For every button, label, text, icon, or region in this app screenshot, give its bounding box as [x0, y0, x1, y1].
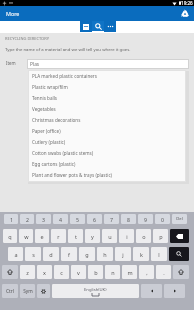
button[interactable]: o — [136, 229, 151, 243]
button[interactable]: 7 — [104, 214, 119, 224]
button[interactable]: b — [88, 265, 103, 279]
button[interactable]: m — [122, 265, 137, 279]
button[interactable]: . — [156, 265, 171, 279]
staticText: z — [26, 269, 29, 276]
button[interactable]: Search — [169, 247, 189, 261]
staticText: More — [6, 10, 20, 17]
staticText: Del — [176, 216, 183, 222]
staticText: n — [111, 269, 115, 276]
staticText: Vegetables — [32, 106, 56, 112]
button[interactable]: n — [105, 265, 120, 279]
staticText: f — [68, 251, 70, 258]
button[interactable]: 6 — [87, 214, 102, 224]
staticText: q — [8, 233, 12, 240]
staticText: 5 — [76, 216, 79, 223]
button[interactable]: 4 — [53, 214, 68, 224]
staticText: x — [43, 269, 46, 276]
button[interactable]: 9 — [138, 214, 153, 224]
staticText: 3 — [42, 216, 45, 223]
staticText: 6 — [93, 216, 96, 223]
staticText: 2 — [26, 216, 29, 223]
staticText: 8 — [127, 216, 130, 223]
button[interactable]: k — [133, 247, 149, 261]
button[interactable]: Sym — [20, 284, 35, 298]
button[interactable]: Plant and flower pots & trays (plastic) — [28, 169, 186, 180]
button[interactable]: 5 — [70, 214, 85, 224]
staticText: i — [126, 233, 128, 240]
button[interactable]: Egg cartons (plastic) — [28, 158, 186, 169]
button[interactable]: Shift — [2, 265, 18, 279]
staticText: s — [32, 251, 35, 258]
button[interactable]: e — [35, 229, 49, 243]
button[interactable]: Cotton swabs (plastic stems) — [28, 147, 186, 158]
staticText: Paper (office) — [32, 128, 61, 134]
button[interactable]: 0 — [155, 214, 170, 224]
button[interactable]: Christmas decorations — [28, 114, 186, 125]
button[interactable]: Tennis balls — [28, 92, 186, 103]
button[interactable]: s — [25, 247, 41, 261]
button[interactable]: Left — [141, 284, 162, 298]
staticText: Sym — [23, 288, 33, 295]
button[interactable]: 3 — [36, 214, 51, 224]
button[interactable]: q — [3, 229, 17, 243]
staticText: 0 — [161, 216, 164, 223]
button[interactable]: More options — [104, 21, 116, 32]
staticText: l — [158, 251, 160, 258]
staticText: v — [77, 269, 80, 276]
button[interactable]: z — [20, 265, 35, 279]
button[interactable]: Backspace — [170, 229, 189, 243]
staticText: t — [75, 233, 77, 240]
staticText: Ctrl — [6, 288, 14, 295]
staticText: English(UK) — [84, 287, 107, 293]
button[interactable]: f — [61, 247, 77, 261]
staticText: h — [103, 251, 107, 258]
button[interactable]: r — [51, 229, 66, 243]
button[interactable]: Directory — [80, 21, 92, 32]
button[interactable]: Settings — [37, 284, 50, 298]
button[interactable]: t — [68, 229, 83, 243]
button[interactable]: g — [79, 247, 95, 261]
button[interactable]: 8 — [121, 214, 136, 224]
button[interactable]: , — [139, 265, 154, 279]
button[interactable]: Del — [172, 214, 187, 224]
staticText: Christmas decorations — [32, 117, 81, 123]
button[interactable]: Cutlery (plastic) — [28, 136, 186, 147]
button[interactable]: c — [54, 265, 69, 279]
staticText: RECYCLING DIRECTORY — [5, 36, 49, 41]
button[interactable]: w — [19, 229, 33, 243]
staticText: g — [85, 251, 89, 258]
staticText: 1 — [10, 216, 13, 223]
button[interactable]: Vegetables — [28, 103, 186, 114]
button[interactable]: English(UK) — [52, 284, 139, 298]
button[interactable]: i — [119, 229, 134, 243]
button[interactable]: Ctrl — [2, 284, 18, 298]
button[interactable]: Right — [164, 284, 185, 298]
staticText: Tennis balls — [32, 95, 58, 101]
staticText: Cutlery (plastic) — [32, 139, 66, 145]
button[interactable]: Shift — [173, 265, 189, 279]
button[interactable]: a — [8, 247, 23, 261]
staticText: j — [122, 251, 124, 258]
button[interactable]: Search — [92, 21, 104, 32]
button[interactable]: p — [153, 229, 168, 243]
button[interactable]: PLA marked plastic containers — [28, 70, 186, 81]
staticText: PLA marked plastic containers — [32, 73, 97, 79]
button[interactable]: h — [97, 247, 113, 261]
staticText: . — [163, 269, 165, 276]
button[interactable]: 1 — [4, 214, 18, 224]
staticText: 7 — [110, 216, 113, 223]
button[interactable]: l — [151, 247, 167, 261]
button[interactable]: u — [102, 229, 117, 243]
button[interactable]: Paper (office) — [28, 125, 186, 136]
button[interactable]: v — [71, 265, 86, 279]
button[interactable]: j — [115, 247, 131, 261]
button[interactable]: 2 — [20, 214, 34, 224]
button[interactable]: Plastic wrap/film — [28, 81, 186, 92]
button[interactable]: Refresh — [179, 8, 190, 19]
button[interactable]: d — [43, 247, 59, 261]
staticText: Cotton swabs (plastic stems) — [32, 150, 94, 156]
staticText: 4 — [59, 216, 62, 223]
staticText: r — [57, 233, 60, 240]
button[interactable]: x — [37, 265, 52, 279]
button[interactable]: y — [85, 229, 100, 243]
